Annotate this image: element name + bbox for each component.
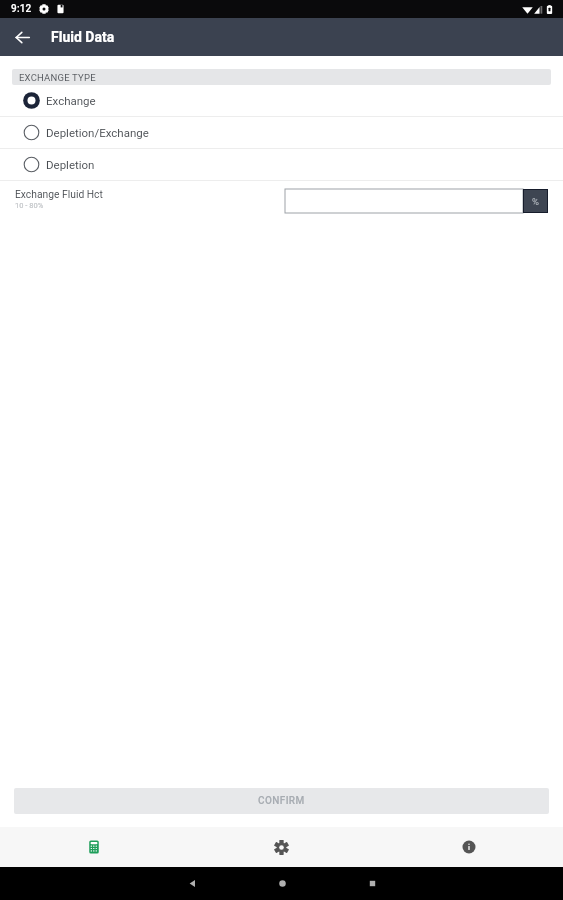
button[interactable]: Recents: [343, 867, 401, 900]
button[interactable]: Percent unit: [523, 189, 548, 213]
button[interactable]: Depletion/Exchange: [0, 117, 563, 148]
button[interactable]: Depletion: [0, 149, 563, 180]
staticText: Depletion: [46, 158, 95, 171]
staticText: Exchange Fluid Hct: [15, 188, 103, 200]
button[interactable]: Home: [253, 867, 311, 900]
staticText: Exchange: [46, 94, 96, 107]
button[interactable]: Exchange: [0, 85, 563, 116]
staticText: EXCHANGE TYPE: [19, 72, 96, 83]
button[interactable]: [285, 189, 523, 213]
staticText: 9:12: [11, 3, 32, 15]
button[interactable]: Calculator: [0, 827, 187, 867]
button[interactable]: Info: [375, 827, 563, 867]
button[interactable]: Back: [0, 18, 44, 56]
staticText: Depletion/Exchange: [46, 126, 149, 139]
staticText: CONFIRM: [258, 795, 305, 807]
staticText: 10 - 80%: [15, 201, 44, 210]
button[interactable]: Settings: [187, 827, 375, 867]
button[interactable]: CONFIRM: [14, 788, 549, 814]
staticText: %: [532, 196, 539, 207]
button[interactable]: Back: [163, 867, 221, 900]
staticText: Fluid Data: [51, 29, 115, 45]
